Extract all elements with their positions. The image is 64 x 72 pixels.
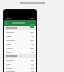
button[interactable]: [4, 42, 36, 46]
button[interactable]: [4, 30, 36, 34]
button[interactable]: Menu: [4, 20, 36, 26]
button[interactable]: Menu: [5, 22, 8, 25]
button[interactable]: [4, 62, 36, 66]
button[interactable]: [4, 50, 36, 54]
button[interactable]: [4, 70, 36, 72]
button[interactable]: [4, 58, 36, 62]
button[interactable]: [4, 66, 36, 70]
button[interactable]: [4, 46, 36, 50]
button[interactable]: [4, 38, 36, 42]
button[interactable]: [4, 34, 36, 38]
